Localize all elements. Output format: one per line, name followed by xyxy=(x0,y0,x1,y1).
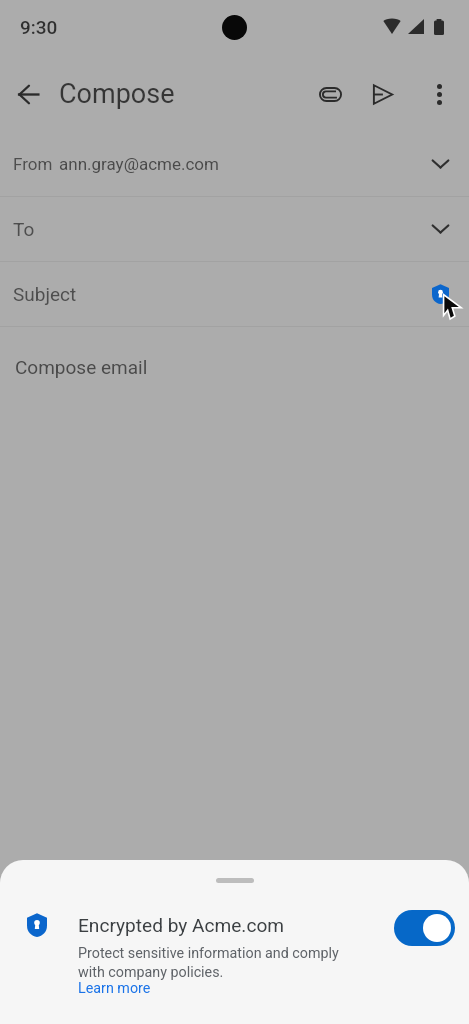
button[interactable]: Attach file xyxy=(308,72,352,116)
button[interactable]: Expand recipients xyxy=(420,144,460,184)
button[interactable]: Send xyxy=(360,72,404,116)
button[interactable]: From xyxy=(0,132,469,196)
staticText: Encrypted by Acme.com xyxy=(78,914,285,936)
staticText: Subject xyxy=(13,283,77,305)
button[interactable]: Back xyxy=(6,72,50,116)
staticText: Compose email xyxy=(15,356,148,378)
button[interactable]: To xyxy=(0,197,469,261)
button[interactable]: Expand recipients xyxy=(420,209,460,249)
staticText: To xyxy=(13,218,35,240)
staticText: From xyxy=(13,154,53,174)
button[interactable]: Encryption settings xyxy=(424,278,456,310)
staticText: ann.gray@acme.com xyxy=(59,154,219,174)
button[interactable]: More options xyxy=(417,72,461,116)
staticText: Protect sensitive information and comply… xyxy=(78,945,339,980)
button[interactable]: Encryption toggle xyxy=(394,910,455,946)
staticText: 9:30 xyxy=(20,16,58,38)
staticText: Compose xyxy=(59,78,175,110)
button[interactable]: Learn more xyxy=(78,980,151,997)
button[interactable]: Subject xyxy=(0,262,469,326)
